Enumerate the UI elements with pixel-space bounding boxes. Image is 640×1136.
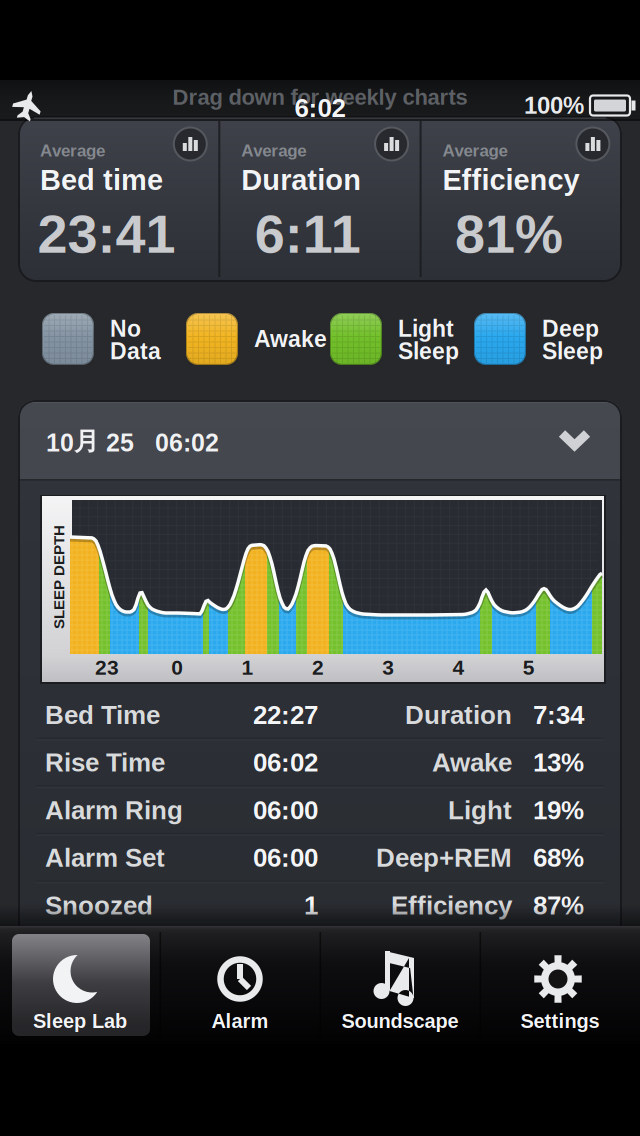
staticText: 2 (312, 656, 324, 679)
staticText: 22:27 (253, 700, 318, 729)
staticText: 68% (533, 843, 584, 872)
staticText: 06:00 (253, 843, 318, 872)
staticText: Rise Time (45, 748, 165, 777)
staticText: Efficiency (443, 164, 580, 196)
staticText: 1 (242, 656, 254, 679)
staticText: Soundscape (341, 1010, 458, 1032)
staticText: 6:11 (255, 204, 361, 264)
staticText: 06:02 (253, 748, 318, 777)
staticText: Bed time (40, 164, 163, 196)
button[interactable]: Weekly Efficiency chart (572, 123, 614, 165)
staticText: Alarm Set (45, 843, 165, 872)
staticText: 1 (304, 891, 318, 920)
staticText: Alarm Ring (45, 796, 183, 825)
staticText: Snoozed (45, 891, 153, 920)
staticText: Awake (432, 748, 512, 777)
staticText: Average (443, 141, 508, 160)
staticText: 87% (533, 891, 584, 920)
staticText: Drag down for weekly charts (172, 85, 467, 109)
staticText: 13% (533, 748, 584, 777)
button[interactable]: Soundscape (320, 926, 480, 1044)
staticText: 6:02 (294, 93, 345, 122)
staticText: 23:41 (37, 204, 175, 264)
staticText: 23 (95, 656, 119, 679)
button[interactable]: Settings (480, 926, 640, 1044)
staticText: 100% (524, 92, 584, 119)
staticText: 19% (533, 796, 584, 825)
staticText: 10月 25 06:02 (46, 426, 219, 457)
staticText: Average (40, 141, 105, 160)
button[interactable]: Collapse day (18, 400, 622, 480)
staticText: SLEEP DEPTH (7, 569, 111, 585)
staticText: Deep+REM (376, 843, 512, 872)
staticText: Light (448, 796, 512, 825)
staticText: Duration (405, 700, 512, 729)
staticText: 06:00 (253, 796, 318, 825)
staticText: 5 (523, 656, 535, 679)
staticText: Bed Time (45, 700, 160, 729)
staticText: No Data (110, 316, 161, 364)
staticText: Settings (520, 1010, 599, 1032)
staticText: Awake (254, 326, 327, 352)
staticText: 0 (171, 656, 183, 679)
staticText: 3 (382, 656, 394, 679)
button[interactable]: Sleep Lab (0, 926, 160, 1044)
button[interactable]: Alarm (160, 926, 320, 1044)
staticText: 81% (455, 204, 563, 264)
staticText: Efficiency (391, 891, 512, 920)
staticText: 4 (452, 656, 464, 679)
staticText: Alarm (211, 1010, 268, 1032)
staticText: Average (241, 141, 306, 160)
staticText: Light Sleep (398, 316, 459, 364)
staticText: Sleep Lab (33, 1010, 127, 1032)
staticText: Duration (241, 164, 361, 196)
button[interactable]: Weekly Duration chart (371, 123, 413, 165)
staticText: Deep Sleep (542, 316, 603, 364)
staticText: 7:34 (533, 700, 584, 729)
button[interactable]: Weekly Bed time chart (169, 123, 211, 165)
